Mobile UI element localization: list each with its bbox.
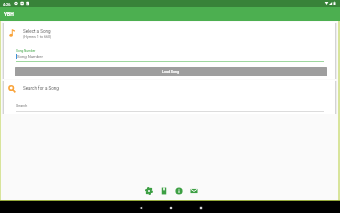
staticText: Select a Song (23, 29, 51, 34)
staticText: Song Number (16, 49, 36, 53)
button[interactable]: Home (165, 202, 176, 213)
staticText: Search (16, 104, 28, 108)
staticText: (Hymns 1 to 660) (23, 35, 52, 39)
button[interactable]: Recents (195, 202, 206, 213)
button[interactable]: Back (135, 202, 146, 213)
staticText: Song Number (17, 54, 43, 59)
button[interactable]: Info (173, 185, 184, 196)
staticText: Search for a Song (23, 86, 59, 91)
button[interactable]: Settings (143, 185, 154, 196)
button[interactable]: Load Song (15, 67, 327, 76)
button[interactable]: Email (188, 185, 199, 196)
staticText: Load Song (162, 70, 180, 74)
staticText: 4:26 (3, 2, 11, 6)
button[interactable]: Hymn book (158, 185, 169, 196)
staticText: YBH (4, 11, 14, 17)
